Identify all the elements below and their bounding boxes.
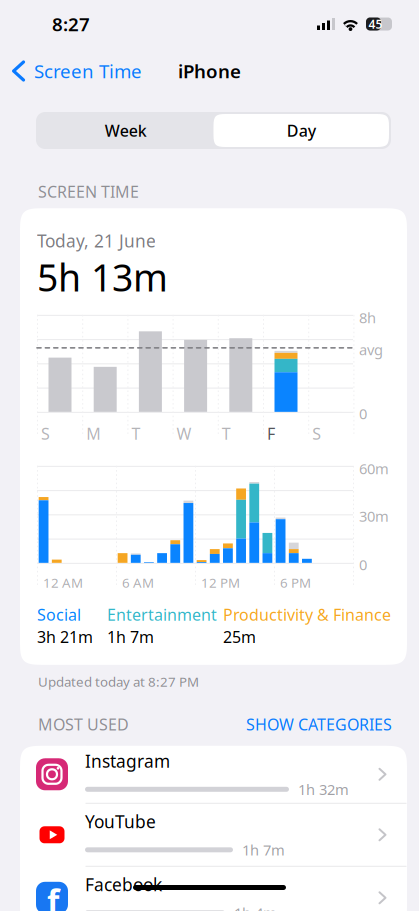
staticText: Week: [105, 120, 147, 141]
staticText: Facebook: [85, 873, 162, 896]
staticText: 3h 21m: [37, 626, 93, 647]
button[interactable]: Screen Time: [11, 53, 142, 89]
button[interactable]: f: [20, 867, 407, 911]
staticText: 45: [368, 16, 382, 32]
staticText: 1h 32m: [298, 780, 349, 799]
staticText: T: [131, 423, 140, 444]
button[interactable]: YouTube: [20, 804, 407, 867]
staticText: 30m: [359, 506, 389, 526]
staticText: Social: [37, 604, 81, 625]
staticText: Entertainment: [107, 604, 217, 625]
staticText: 6 AM: [122, 574, 154, 591]
staticText: 6 PM: [280, 574, 311, 591]
staticText: 0: [359, 404, 367, 423]
staticText: Screen Time: [34, 59, 142, 83]
staticText: T: [222, 423, 231, 444]
staticText: Productivity & Finance: [223, 604, 391, 625]
button[interactable]: Week: [38, 114, 213, 147]
staticText: W: [177, 423, 192, 444]
staticText: Instagram: [85, 749, 170, 772]
button[interactable]: Day: [213, 114, 389, 147]
staticText: iPhone: [178, 59, 241, 83]
staticText: S: [41, 423, 50, 444]
button[interactable]: Instagram: [20, 746, 407, 804]
staticText: 5h 13m: [37, 252, 168, 302]
staticText: YouTube: [85, 810, 156, 833]
staticText: SCREEN TIME: [38, 181, 139, 202]
staticText: S: [312, 423, 321, 444]
staticText: Today, 21 June: [37, 229, 156, 252]
staticText: f: [47, 879, 59, 911]
staticText: 8h: [359, 308, 376, 327]
staticText: M: [86, 423, 101, 444]
staticText: SHOW CATEGORIES: [246, 713, 392, 735]
staticText: Day: [287, 120, 316, 141]
staticText: 1h 7m: [107, 626, 154, 647]
staticText: 1h 4m: [234, 903, 277, 911]
staticText: 60m: [359, 459, 389, 478]
staticText: 0: [359, 555, 367, 574]
staticText: 8:27: [52, 12, 90, 36]
staticText: F: [267, 423, 275, 444]
staticText: avg: [359, 340, 383, 359]
staticText: 12 AM: [43, 574, 83, 591]
staticText: 12 PM: [201, 574, 240, 591]
button[interactable]: SHOW CATEGORIES: [246, 713, 392, 735]
staticText: 1h 7m: [242, 840, 285, 860]
staticText: Updated today at 8:27 PM: [38, 673, 199, 690]
staticText: MOST USED: [38, 713, 129, 735]
staticText: 25m: [223, 626, 256, 647]
